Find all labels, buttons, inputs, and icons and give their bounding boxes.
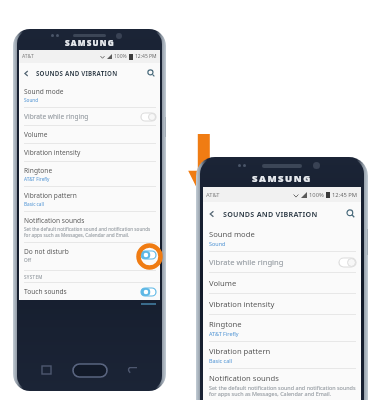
button[interactable]: Volume	[19, 126, 160, 143]
staticText: Vibrate while ringing	[24, 112, 89, 121]
button[interactable]: Touch sounds toggle	[141, 288, 156, 296]
staticText: Touch sounds	[24, 287, 67, 296]
staticText: AT&T Firefly	[209, 330, 239, 337]
staticText: SOUNDS AND VIBRATION	[223, 209, 318, 219]
staticText: Vibration pattern	[24, 191, 77, 200]
staticText: Sound mode	[24, 87, 64, 96]
button[interactable]: Vibration intensity	[19, 144, 160, 161]
button[interactable]: Back	[19, 63, 160, 83]
staticText: SYSTEM	[24, 274, 43, 280]
staticText: 100%	[309, 191, 324, 199]
staticText: Notification sounds	[24, 216, 85, 225]
staticText: Volume	[209, 278, 237, 288]
staticText: Basic call	[209, 357, 233, 364]
other: Search	[147, 69, 155, 77]
staticText: Ringtone	[24, 166, 53, 175]
other: Search	[346, 209, 355, 218]
staticText: Sound	[209, 240, 226, 247]
button[interactable]: Vibrate while ringing	[19, 108, 160, 125]
button[interactable]: Sound mode	[19, 83, 160, 107]
button[interactable]: Ringtone	[19, 162, 160, 186]
button[interactable]: Ringtone	[203, 315, 361, 341]
other: Back	[127, 366, 137, 374]
button[interactable]: Volume	[203, 273, 361, 293]
button[interactable]: Vibration intensity	[203, 294, 361, 314]
staticText: AT&T	[206, 191, 220, 199]
staticText: AT&T Firefly	[24, 176, 50, 182]
button[interactable]: Vibration pattern	[203, 342, 361, 368]
staticText: AT&T	[22, 53, 34, 60]
button[interactable]: Back	[203, 202, 361, 225]
staticText: Vibration intensity	[24, 148, 81, 157]
button[interactable]: Touch sounds	[19, 283, 160, 300]
staticText: Do not disturb	[24, 247, 69, 256]
staticText: SOUNDS AND VIBRATION	[36, 69, 118, 77]
staticText: 100%	[114, 53, 127, 60]
staticText: 12:45 PM	[135, 53, 157, 60]
staticText: Off	[24, 257, 31, 263]
staticText: 12:45 PM	[332, 191, 358, 199]
staticText: Basic call	[24, 201, 44, 207]
button[interactable]: Vibrate while ringing toggle	[141, 113, 156, 121]
other: Recents	[42, 366, 51, 374]
button[interactable]: Do not disturb	[19, 243, 160, 267]
staticText: Ringtone	[209, 319, 242, 329]
staticText: Set the default notification sound and n…	[24, 226, 156, 238]
button[interactable]: Vibrate while ringing	[203, 252, 361, 272]
button[interactable]: Notification sounds	[203, 369, 361, 400]
staticText: SAMSUNG	[65, 37, 115, 48]
staticText: Notification sounds	[209, 373, 279, 383]
button[interactable]: Do not disturb toggle	[141, 251, 156, 259]
staticText: Volume	[24, 130, 48, 139]
other: Home	[73, 364, 107, 377]
staticText: SAMSUNG	[252, 172, 312, 185]
staticText: Set the default notification sound and n…	[209, 384, 356, 398]
button[interactable]: Vibration pattern	[19, 187, 160, 211]
other: Back	[23, 70, 30, 77]
staticText: Sound	[24, 97, 39, 103]
staticText: Vibration pattern	[209, 346, 271, 356]
button[interactable]: Vibrate while ringing toggle	[339, 258, 356, 267]
staticText: Vibration intensity	[209, 299, 275, 309]
button[interactable]: Sound mode	[203, 225, 361, 251]
other: Back	[208, 210, 216, 218]
staticText: Sound mode	[209, 229, 255, 239]
button[interactable]: Notification sounds	[19, 212, 160, 242]
staticText: Vibrate while ringing	[209, 257, 284, 267]
